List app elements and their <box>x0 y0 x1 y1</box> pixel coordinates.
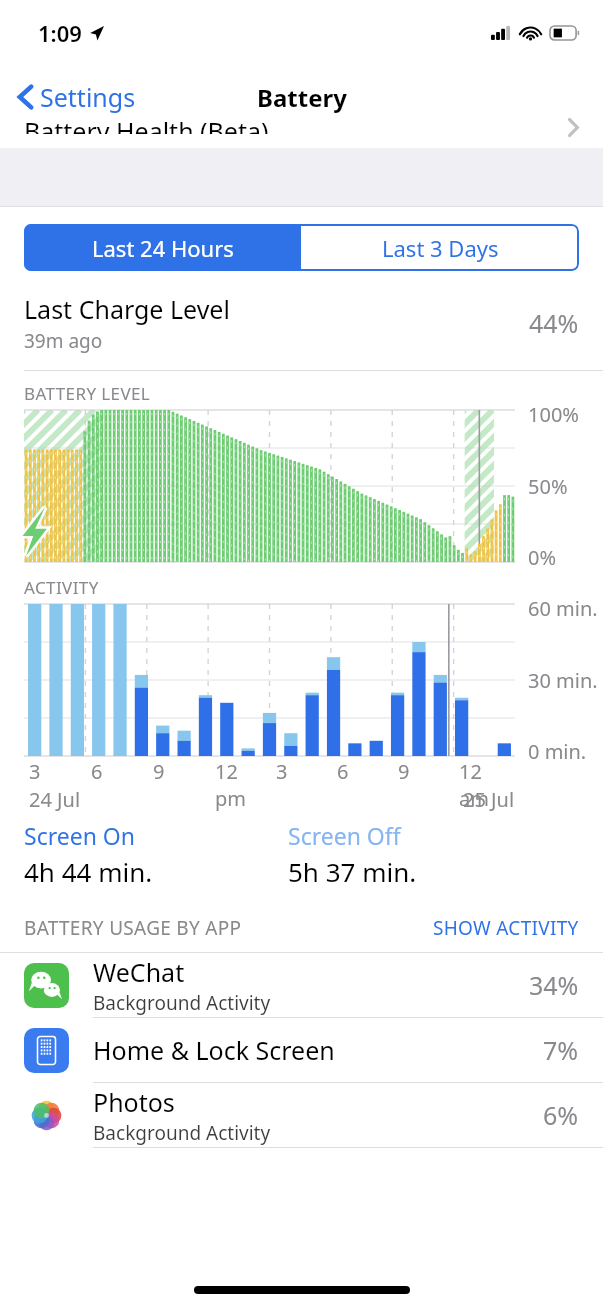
button[interactable]: Last Charge Level <box>0 292 603 354</box>
staticText: 39m ago <box>24 328 103 354</box>
staticText: 5h 37 min. <box>288 854 417 889</box>
button[interactable]: Home & Lock Screen <box>0 1018 603 1082</box>
staticText: WeChat <box>93 955 185 989</box>
staticText: Home & Lock Screen <box>93 1033 335 1067</box>
staticText: 3 <box>276 758 288 785</box>
button[interactable]: SHOW ACTIVITY <box>433 915 579 941</box>
staticText: Last 24 Hours <box>92 233 234 263</box>
staticText: Battery Health (Beta) <box>24 114 269 134</box>
staticText: Last 3 Days <box>382 233 499 263</box>
staticText: Last Charge Level <box>24 292 230 326</box>
staticText: Screen On <box>24 820 136 851</box>
staticText: 0 min. <box>528 738 587 765</box>
staticText: 7% <box>543 1033 579 1067</box>
button[interactable]: Last 24 Hours <box>24 224 301 271</box>
staticText: ACTIVITY <box>24 576 99 599</box>
button[interactable]: Settings <box>12 74 142 120</box>
staticText: 9 <box>398 758 410 785</box>
staticText: 6 <box>337 758 349 785</box>
staticText: 3 <box>29 758 41 785</box>
staticText: SHOW ACTIVITY <box>433 915 579 941</box>
staticText: 44% <box>529 306 579 340</box>
staticText: 30 min. <box>528 667 598 694</box>
staticText: Background Activity <box>93 1120 271 1146</box>
staticText: Screen Off <box>288 820 401 851</box>
staticText: 6 <box>91 758 103 785</box>
staticText: 100% <box>528 401 579 428</box>
staticText: 60 min. <box>528 595 598 622</box>
staticText: Photos <box>93 1085 175 1119</box>
staticText: 9 <box>153 758 165 785</box>
staticText: 24 Jul <box>29 786 81 813</box>
button[interactable]: WeChat <box>0 953 603 1017</box>
staticText: BATTERY LEVEL <box>24 382 151 405</box>
staticText: 34% <box>529 968 579 1002</box>
staticText: 0% <box>528 544 557 571</box>
staticText: Background Activity <box>93 990 271 1016</box>
button[interactable]: Last 3 Days <box>301 224 579 271</box>
staticText: 12 am <box>459 758 515 812</box>
staticText: 6% <box>543 1098 579 1132</box>
staticText: 1:09 <box>38 18 82 48</box>
staticText: 25 Jul <box>463 786 515 813</box>
button[interactable]: Photos <box>0 1083 603 1147</box>
staticText: 50% <box>528 473 568 500</box>
staticText: Battery <box>257 81 347 114</box>
staticText: 4h 44 min. <box>24 854 153 889</box>
staticText: 12 pm <box>215 758 271 812</box>
staticText: BATTERY USAGE BY APP <box>24 915 433 941</box>
staticText: Settings <box>40 80 136 114</box>
